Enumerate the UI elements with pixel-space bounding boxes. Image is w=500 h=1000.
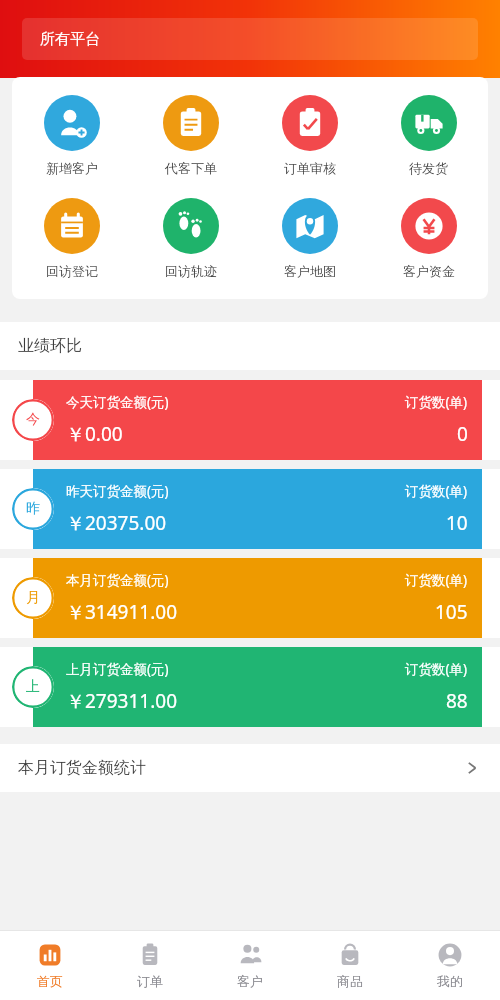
staticText: 客户地图: [284, 263, 336, 279]
staticText: ￥279311.00: [66, 688, 178, 714]
staticText: 上: [26, 678, 40, 696]
button[interactable]: 客户地图: [250, 196, 369, 281]
staticText: 客户资金: [403, 263, 455, 279]
staticText: 105: [435, 599, 468, 625]
button[interactable]: 订单: [100, 931, 200, 1000]
button[interactable]: 待发货: [369, 93, 488, 178]
button[interactable]: 我的: [400, 931, 500, 1000]
staticText: 昨天订货金额(元): [66, 482, 169, 500]
staticText: 今: [26, 411, 40, 429]
staticText: 客户: [237, 973, 263, 989]
staticText: 首页: [37, 973, 63, 989]
button[interactable]: 新增客户: [12, 93, 131, 178]
button[interactable]: 本月订货金额统计: [0, 744, 500, 792]
staticText: 待发货: [409, 160, 448, 176]
staticText: 新增客户: [46, 160, 98, 176]
staticText: 业绩环比: [18, 336, 82, 356]
button[interactable]: 本月订货金额(元): [0, 558, 500, 638]
staticText: 回访登记: [46, 263, 98, 279]
staticText: 上月订货金额(元): [66, 660, 169, 678]
staticText: 订货数(单): [405, 571, 468, 589]
staticText: ￥0.00: [66, 421, 123, 447]
button[interactable]: 客户资金: [369, 196, 488, 281]
staticText: 10: [446, 510, 468, 536]
staticText: 本月订货金额(元): [66, 571, 169, 589]
button[interactable]: 回访登记: [12, 196, 131, 281]
staticText: 订货数(单): [405, 660, 468, 678]
button[interactable]: 订单审核: [250, 93, 369, 178]
button[interactable]: 昨天订货金额(元): [0, 469, 500, 549]
staticText: 代客下单: [165, 160, 217, 176]
staticText: 所有平台: [40, 30, 100, 49]
staticText: 订单审核: [284, 160, 336, 176]
staticText: 订单: [137, 973, 163, 989]
staticText: 本月订货金额统计: [18, 758, 146, 778]
staticText: 88: [446, 688, 468, 714]
button[interactable]: 上月订货金额(元): [0, 647, 500, 727]
button[interactable]: 客户: [200, 931, 300, 1000]
staticText: 今天订货金额(元): [66, 393, 169, 411]
button[interactable]: 首页: [0, 931, 100, 1000]
staticText: ￥20375.00: [66, 510, 167, 536]
staticText: ￥314911.00: [66, 599, 178, 625]
button[interactable]: 所有平台: [22, 18, 478, 60]
button[interactable]: 代客下单: [131, 93, 250, 178]
staticText: 0: [457, 421, 468, 447]
staticText: 订货数(单): [405, 482, 468, 500]
staticText: 回访轨迹: [165, 263, 217, 279]
staticText: 订货数(单): [405, 393, 468, 411]
button[interactable]: 商品: [300, 931, 400, 1000]
staticText: 我的: [437, 973, 463, 989]
staticText: 商品: [337, 973, 363, 989]
staticText: 昨: [26, 500, 40, 518]
staticText: 月: [26, 589, 40, 607]
button[interactable]: 今天订货金额(元): [0, 380, 500, 460]
button[interactable]: 回访轨迹: [131, 196, 250, 281]
